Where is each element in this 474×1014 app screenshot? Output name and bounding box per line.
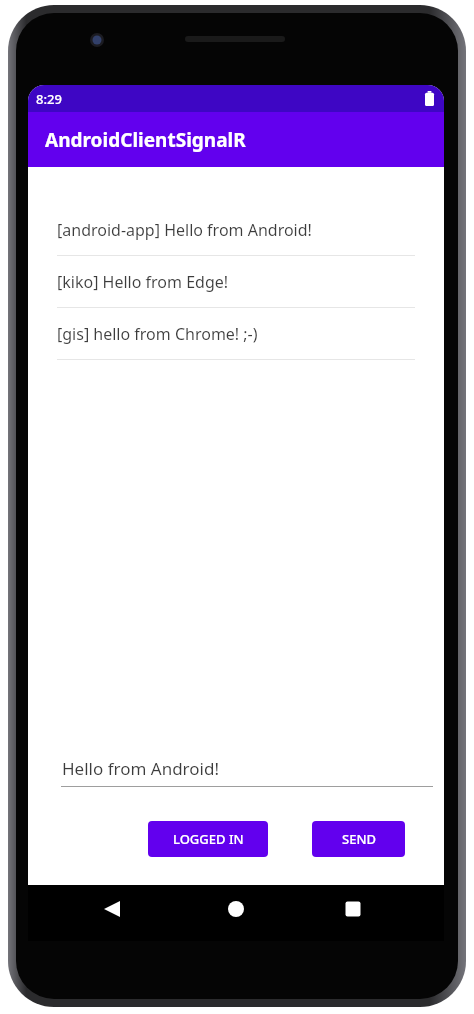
button[interactable]: Back (88, 885, 136, 933)
staticText: SEND (342, 830, 376, 848)
button[interactable]: LOGGED IN (148, 821, 268, 857)
staticText: [kiko] Hello from Edge! (57, 271, 229, 293)
button[interactable]: Hello from Android! (61, 757, 433, 787)
button[interactable]: [android-app] Hello from Android! (28, 204, 444, 256)
button[interactable]: Recent apps (329, 885, 377, 933)
staticText: [android-app] Hello from Android! (57, 219, 312, 241)
button[interactable]: SEND (312, 821, 405, 857)
button[interactable]: [kiko] Hello from Edge! (28, 256, 444, 308)
staticText: LOGGED IN (173, 830, 244, 848)
staticText: Hello from Android! (62, 757, 219, 780)
button[interactable]: [gis] hello from Chrome! ;-) (28, 308, 444, 360)
staticText: [gis] hello from Chrome! ;-) (57, 323, 258, 345)
button[interactable]: Home (212, 885, 260, 933)
staticText: AndroidClientSignalR (45, 127, 246, 153)
staticText: 8:29 (36, 90, 62, 108)
